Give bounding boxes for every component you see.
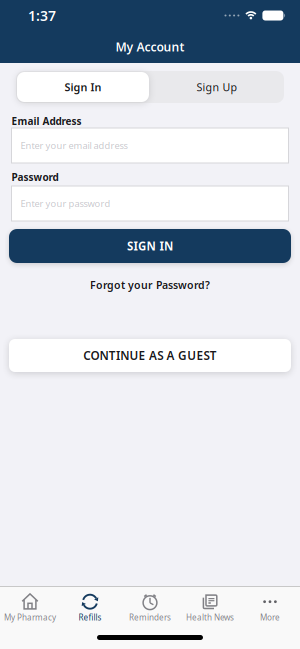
staticText: My Account	[115, 38, 184, 55]
staticText: Health News	[186, 612, 234, 623]
button[interactable]: SIGN IN	[9, 229, 291, 263]
button[interactable]: Reminders	[120, 593, 180, 623]
staticText: More	[260, 612, 280, 623]
button[interactable]: CONTINUE AS A GUEST	[9, 339, 291, 372]
button[interactable]: Forgot your Password?	[90, 278, 210, 292]
button[interactable]: Sign In	[16, 71, 150, 103]
button[interactable]: Health News	[180, 593, 240, 623]
staticText: Sign In	[64, 80, 101, 94]
button[interactable]: More	[240, 593, 300, 623]
staticText: Enter your email address	[20, 139, 127, 152]
staticText: Reminders	[129, 612, 171, 623]
staticText: Email Address	[11, 114, 81, 128]
staticText: SIGN IN	[127, 238, 173, 254]
staticText: CONTINUE AS A GUEST	[83, 347, 217, 363]
staticText: My Pharmacy	[4, 612, 56, 623]
staticText: 1:37	[28, 6, 56, 25]
staticText: Password	[11, 170, 58, 184]
button[interactable]: My Pharmacy	[0, 593, 60, 623]
button[interactable]: Refills	[60, 593, 120, 623]
staticText: Enter your password	[20, 197, 110, 210]
staticText: Sign Up	[196, 80, 237, 94]
staticText: Forgot your Password?	[90, 278, 210, 292]
staticText: Refills	[78, 612, 101, 623]
button[interactable]: Sign Up	[150, 71, 284, 103]
